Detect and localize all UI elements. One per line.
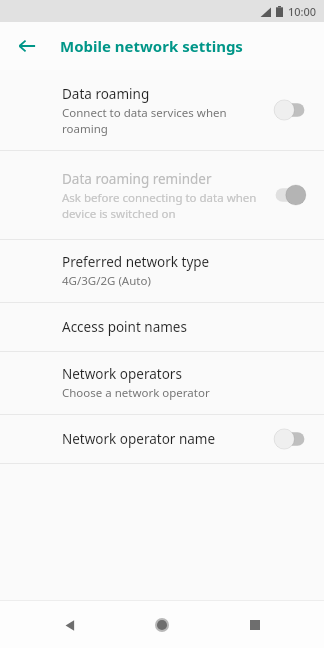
button[interactable]: Back <box>47 602 93 648</box>
button[interactable]: Home <box>139 602 185 648</box>
button[interactable]: Back <box>10 29 44 63</box>
button[interactable]: Toggle <box>272 428 308 450</box>
staticText: Access point names <box>62 318 187 336</box>
button[interactable]: Data roaming <box>0 70 324 150</box>
staticText: 4G/3G/2G (Auto) <box>62 273 151 289</box>
button[interactable]: Network operator name <box>0 415 324 463</box>
staticText: Ask before connecting to data when devic… <box>62 190 262 221</box>
staticText: Data roaming reminder <box>62 170 212 188</box>
staticText: Data roaming <box>62 85 150 103</box>
staticText: Network operators <box>62 365 182 383</box>
button[interactable]: Data roaming reminder <box>0 151 324 239</box>
button[interactable]: Access point names <box>0 303 324 351</box>
staticText: Connect to data services when roaming <box>62 105 262 136</box>
button[interactable]: Preferred network type <box>0 240 324 302</box>
button[interactable]: Network operators <box>0 352 324 414</box>
staticText: Choose a network operator <box>62 385 210 401</box>
staticText: Preferred network type <box>62 253 210 271</box>
button[interactable]: Toggle <box>272 99 308 121</box>
button[interactable]: Toggle <box>272 184 308 206</box>
button[interactable]: Recent apps <box>232 602 278 648</box>
staticText: Network operator name <box>62 430 216 448</box>
staticText: Mobile network settings <box>60 36 243 56</box>
staticText: 10:00 <box>288 4 317 19</box>
